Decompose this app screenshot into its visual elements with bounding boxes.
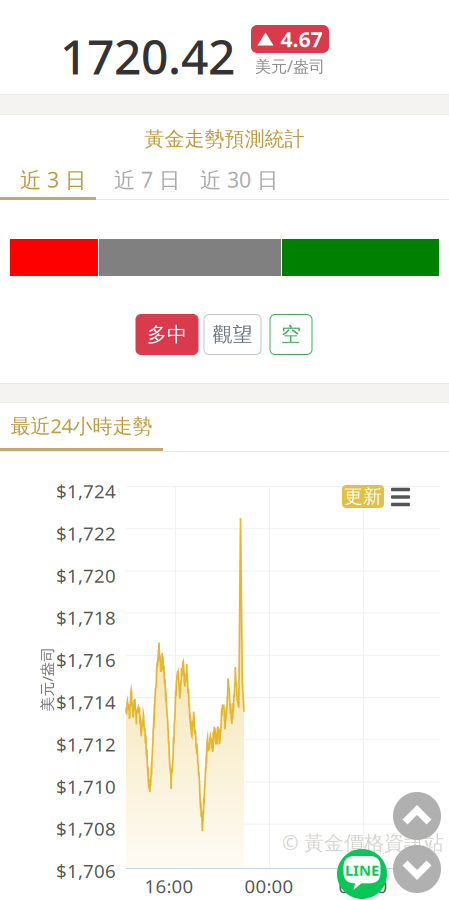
staticText: LINE bbox=[345, 860, 379, 880]
staticText: © 黃金價格資訊站 bbox=[282, 829, 444, 856]
staticText: 16:00 bbox=[144, 874, 193, 898]
button[interactable]: 更新 bbox=[342, 485, 384, 508]
staticText: 最近24小時走勢 bbox=[10, 412, 152, 439]
button[interactable]: 近 3 日 bbox=[5, 159, 101, 200]
button[interactable]: 近 30 日 bbox=[189, 159, 289, 200]
staticText: 08:00 bbox=[338, 874, 387, 898]
staticText: 空 bbox=[281, 322, 301, 347]
staticText: 美元/盎司 bbox=[255, 55, 325, 77]
staticText: 00:00 bbox=[244, 874, 293, 898]
staticText: 更新 bbox=[344, 485, 382, 508]
staticText: 多中 bbox=[147, 322, 187, 347]
staticText: $1,720 bbox=[56, 563, 116, 588]
staticText: $1,710 bbox=[56, 774, 116, 799]
staticText: $1,706 bbox=[56, 858, 116, 883]
staticText: $1,716 bbox=[56, 647, 116, 672]
button[interactable]: 近 7 日 bbox=[105, 159, 189, 200]
button[interactable]: 空 bbox=[270, 314, 312, 354]
button[interactable]: 觀望 bbox=[204, 314, 261, 354]
staticText: 1720.42 bbox=[60, 24, 235, 88]
button[interactable]: Scroll down bbox=[393, 845, 441, 893]
staticText: 4.67 bbox=[280, 25, 322, 53]
staticText: $1,722 bbox=[56, 521, 116, 546]
staticText: $1,712 bbox=[56, 732, 116, 757]
staticText: $1,714 bbox=[56, 690, 116, 714]
button[interactable]: 多中 bbox=[136, 314, 198, 354]
button[interactable]: Menu bbox=[391, 490, 410, 504]
staticText: 觀望 bbox=[212, 322, 252, 347]
staticText: 近 30 日 bbox=[200, 165, 278, 194]
button[interactable]: 最近24小時走勢 bbox=[0, 403, 163, 448]
staticText: 黃金走勢預測統計 bbox=[144, 127, 304, 151]
staticText: 近 7 日 bbox=[114, 165, 180, 194]
staticText: 美元/盎司 bbox=[14, 669, 79, 689]
staticText: $1,708 bbox=[56, 816, 116, 841]
button[interactable]: Share on LINE bbox=[337, 849, 387, 899]
button[interactable]: Scroll up bbox=[393, 792, 441, 840]
staticText: 近 3 日 bbox=[20, 165, 86, 194]
staticText: $1,718 bbox=[56, 605, 116, 630]
staticText: $1,724 bbox=[56, 479, 116, 503]
